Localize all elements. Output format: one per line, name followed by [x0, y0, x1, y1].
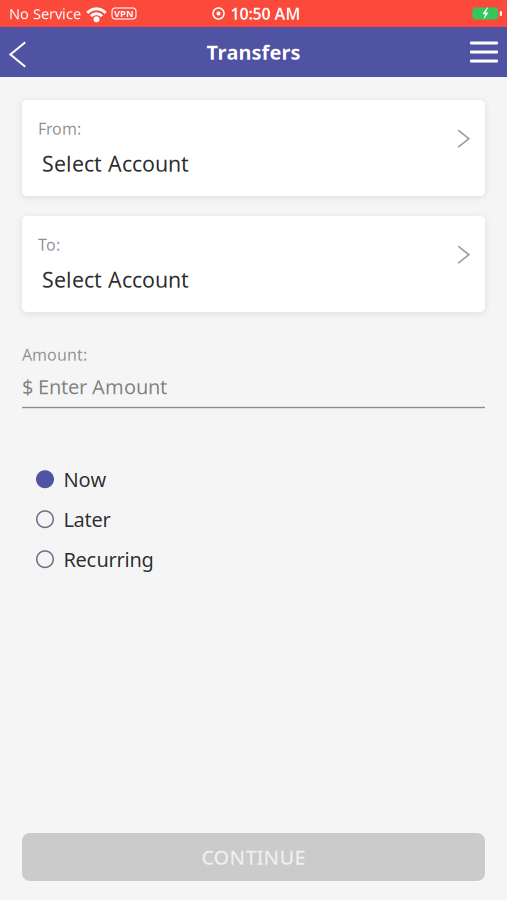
staticText: Recurring — [63, 546, 153, 572]
staticText: Amount: — [22, 344, 87, 365]
staticText: VPN — [114, 7, 134, 20]
button[interactable]: Back — [0, 27, 36, 77]
staticText: Select Account — [42, 149, 189, 177]
button[interactable]: To: — [22, 216, 485, 312]
staticText: To: — [38, 234, 60, 255]
staticText: 10:50 AM — [230, 3, 300, 24]
button[interactable]: From: — [22, 100, 485, 196]
staticText: Now — [63, 466, 106, 492]
staticText: No Service — [9, 4, 81, 23]
button[interactable]: Now — [22, 459, 485, 499]
staticText: Transfers — [206, 39, 300, 65]
button[interactable]: Later — [22, 499, 485, 539]
staticText: Later — [63, 506, 110, 532]
button[interactable]: Recurring — [22, 539, 485, 579]
staticText: $ Enter Amount — [22, 373, 167, 400]
staticText: From: — [38, 118, 81, 139]
staticText: CONTINUE — [201, 844, 305, 870]
button[interactable]: Menu — [461, 27, 507, 77]
button[interactable]: CONTINUE — [22, 833, 485, 881]
staticText: Select Account — [42, 265, 189, 293]
